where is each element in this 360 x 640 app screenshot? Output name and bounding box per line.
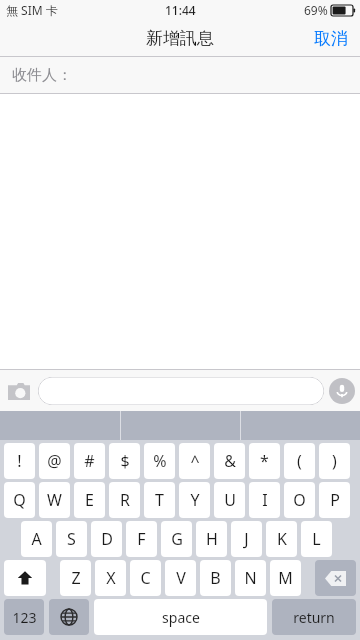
staticText: M <box>278 567 293 589</box>
button[interactable]: Z <box>60 560 91 596</box>
staticText: P <box>330 489 340 511</box>
staticText: D <box>101 528 113 550</box>
button[interactable]: * <box>249 443 280 479</box>
button[interactable]: J <box>231 521 262 557</box>
button[interactable]: 取消 <box>302 22 360 55</box>
staticText: 取消 <box>314 28 348 49</box>
staticText: Q <box>13 489 26 511</box>
button[interactable]: 123 <box>4 599 44 635</box>
button[interactable]: ) <box>319 443 350 479</box>
staticText: W <box>47 489 62 511</box>
staticText: G <box>171 528 183 550</box>
button[interactable]: K <box>266 521 297 557</box>
staticText: ^ <box>190 450 200 472</box>
button[interactable]: R <box>109 482 140 518</box>
staticText: 11:44 <box>165 2 196 18</box>
staticText: T <box>155 489 164 511</box>
button[interactable]: return <box>272 599 356 635</box>
staticText: C <box>140 567 151 589</box>
staticText: # <box>84 450 95 472</box>
button[interactable]: ! <box>4 443 35 479</box>
button[interactable]: Shift <box>4 560 46 596</box>
staticText: * <box>260 450 269 472</box>
staticText: % <box>153 450 167 472</box>
button[interactable]: ^ <box>179 443 210 479</box>
button[interactable]: Q <box>4 482 35 518</box>
button[interactable]: D <box>91 521 122 557</box>
staticText: space <box>162 608 200 627</box>
staticText: N <box>244 567 257 589</box>
staticText: F <box>137 528 146 550</box>
button[interactable]: Dictate <box>324 373 360 409</box>
staticText: E <box>85 489 94 511</box>
staticText: 收件人： <box>12 66 72 85</box>
button[interactable]: C <box>130 560 161 596</box>
button[interactable]: W <box>39 482 70 518</box>
button[interactable]: H <box>196 521 227 557</box>
button[interactable]: T <box>144 482 175 518</box>
staticText: H <box>206 528 218 550</box>
staticText: B <box>210 567 221 589</box>
staticText: K <box>277 528 287 550</box>
staticText: return <box>293 608 335 627</box>
button[interactable]: Next keyboard <box>49 599 89 635</box>
button[interactable]: U <box>214 482 245 518</box>
button[interactable]: M <box>270 560 301 596</box>
staticText: ( <box>297 450 302 472</box>
staticText: 123 <box>12 608 37 627</box>
button[interactable] <box>38 377 324 405</box>
staticText: @ <box>47 450 62 472</box>
button[interactable]: 收件人： <box>0 57 360 93</box>
button[interactable]: F <box>126 521 157 557</box>
button[interactable]: P <box>319 482 350 518</box>
button[interactable]: N <box>235 560 266 596</box>
staticText: ! <box>17 450 22 472</box>
staticText: R <box>120 489 130 511</box>
staticText: ) <box>332 450 337 472</box>
button[interactable]: X <box>95 560 126 596</box>
staticText: U <box>224 489 236 511</box>
staticText: X <box>106 567 116 589</box>
button[interactable]: V <box>165 560 196 596</box>
staticText: 新增訊息 <box>146 28 214 49</box>
button[interactable]: O <box>284 482 315 518</box>
staticText: O <box>293 489 306 511</box>
button[interactable]: ( <box>284 443 315 479</box>
button[interactable]: B <box>200 560 231 596</box>
staticText: Y <box>190 489 200 511</box>
button[interactable]: $ <box>109 443 140 479</box>
button[interactable]: Camera <box>0 372 38 410</box>
button[interactable]: # <box>74 443 105 479</box>
staticText: 69% <box>304 2 328 18</box>
staticText: & <box>224 450 236 472</box>
staticText: V <box>176 567 186 589</box>
staticText: L <box>312 528 321 550</box>
button[interactable]: space <box>94 599 267 635</box>
staticText: I <box>262 489 268 511</box>
staticText: A <box>31 528 42 550</box>
button[interactable]: % <box>144 443 175 479</box>
button[interactable]: Delete <box>315 560 356 596</box>
button[interactable]: Y <box>179 482 210 518</box>
button[interactable]: @ <box>39 443 70 479</box>
staticText: S <box>67 528 76 550</box>
button[interactable]: E <box>74 482 105 518</box>
staticText: Z <box>71 567 81 589</box>
button[interactable]: A <box>21 521 52 557</box>
button[interactable]: G <box>161 521 192 557</box>
staticText: J <box>244 528 249 550</box>
button[interactable]: & <box>214 443 245 479</box>
button[interactable]: L <box>301 521 332 557</box>
button[interactable]: I <box>249 482 280 518</box>
staticText: $ <box>120 450 130 472</box>
button[interactable]: S <box>56 521 87 557</box>
staticText: 無 SIM 卡 <box>6 2 58 18</box>
